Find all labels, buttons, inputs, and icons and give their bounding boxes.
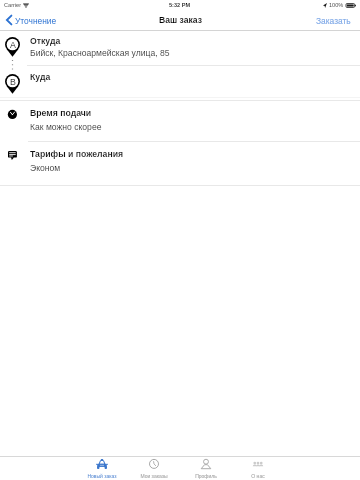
button[interactable]: Уточнение [0,11,65,29]
staticText: Мои заказы [140,473,168,479]
button[interactable] [0,65,360,98]
button[interactable]: New order [76,456,128,480]
button[interactable] [0,100,360,141]
staticText: 100% [329,2,344,8]
staticText: A [10,40,16,50]
staticText: Тарифы и пожелания [30,149,124,159]
button[interactable]: My orders [128,456,180,480]
button[interactable] [0,141,360,185]
button[interactable]: Заказать [307,11,360,29]
staticText: B [10,77,16,87]
button[interactable] [0,30,360,65]
staticText: Как можно скорее [30,122,102,132]
button[interactable]: Profile [180,456,232,480]
button[interactable]: About us [232,456,284,480]
staticText: Заказать [316,16,351,25]
staticText: Ваш заказ [159,15,202,25]
staticText: Новый заказ [87,473,117,479]
staticText: Время подачи [30,108,92,118]
staticText: Уточнение [15,16,57,25]
staticText: Куда [30,72,51,82]
staticText: О нас [251,473,265,479]
staticText: Откуда [30,36,61,46]
staticText: 5:32 PM [169,2,191,8]
staticText: Профиль [195,473,217,479]
staticText: Эконом [30,163,61,173]
staticText: Carrier [4,2,22,8]
staticText: Бийск, Красноармейская улица, 85 [30,48,170,58]
